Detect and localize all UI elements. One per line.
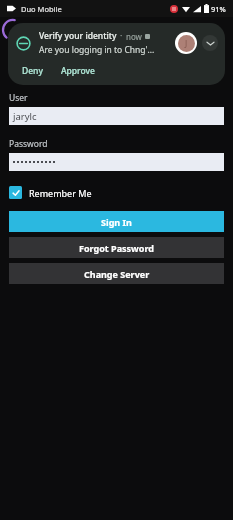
button[interactable]: Forgot Password <box>9 237 224 258</box>
staticText: User <box>9 92 28 104</box>
staticText: now <box>126 31 142 42</box>
staticText: Remember Me <box>29 187 92 199</box>
button[interactable] <box>9 153 224 171</box>
staticText: Password <box>9 138 48 150</box>
button[interactable]: Change Server <box>9 263 224 284</box>
button[interactable]: Approve <box>58 63 98 79</box>
button[interactable]: Sign In <box>9 211 224 232</box>
button[interactable]: Remember Me <box>9 184 92 201</box>
staticText: Duo Mobile <box>21 4 62 14</box>
staticText: jarylc <box>13 110 37 123</box>
staticText: Deny <box>22 65 43 77</box>
staticText: · <box>120 30 123 42</box>
staticText: Are you logging in to Chng'... <box>39 44 155 56</box>
staticText: Verify your identity <box>39 30 117 42</box>
staticText: Approve <box>61 65 95 77</box>
button[interactable]: Expand notification <box>202 35 218 51</box>
staticText: Change Server <box>84 268 150 280</box>
button[interactable]: Deny <box>19 63 46 79</box>
staticText: Sign In <box>101 216 132 228</box>
staticText: 91% <box>211 4 226 14</box>
button[interactable]: Verify your identity <box>8 23 225 85</box>
button[interactable]: jarylc <box>9 107 224 125</box>
staticText: Forgot Password <box>79 242 154 254</box>
staticText: J <box>185 38 188 49</box>
